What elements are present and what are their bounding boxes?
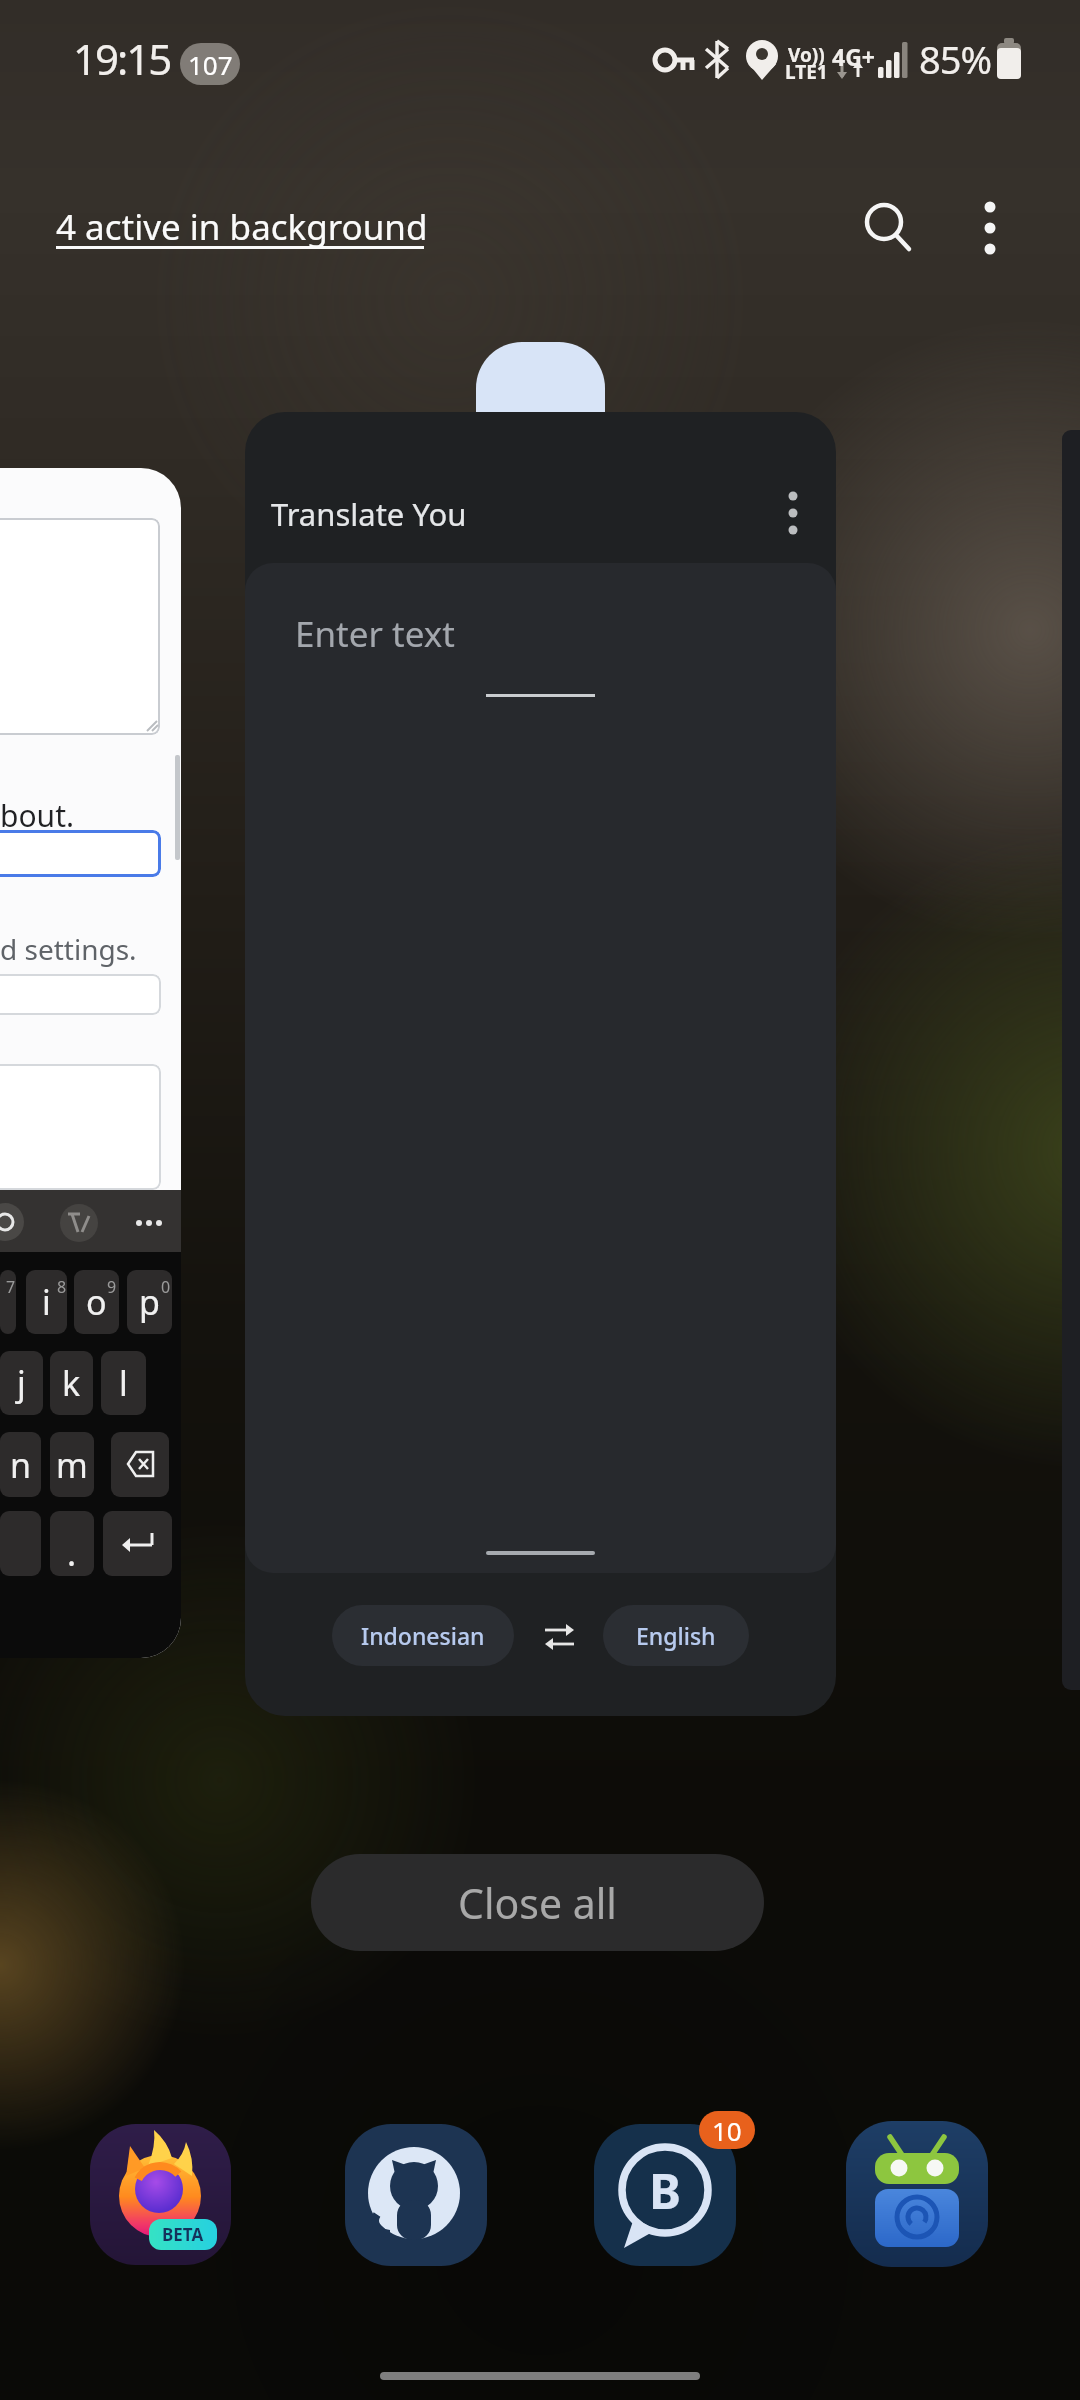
- staticText: Indonesian: [361, 1620, 485, 1651]
- button[interactable]: Close all: [311, 1854, 764, 1951]
- button[interactable]: [476, 342, 605, 473]
- button[interactable]: [966, 204, 1014, 252]
- staticText: d settings.: [0, 930, 137, 968]
- button[interactable]: [0, 1270, 16, 1334]
- staticText: BETA: [162, 2223, 204, 2246]
- staticText: 4 active in background: [56, 203, 428, 251]
- staticText: o: [86, 1279, 107, 1325]
- staticText: .: [67, 1530, 77, 1576]
- staticText: LTE1: [785, 59, 828, 85]
- staticText: Enter text: [295, 610, 455, 658]
- button[interactable]: k: [50, 1351, 93, 1415]
- button[interactable]: [111, 1432, 169, 1497]
- button[interactable]: [846, 2121, 988, 2267]
- button[interactable]: o: [74, 1270, 119, 1334]
- button[interactable]: 4 active in background: [56, 203, 428, 251]
- staticText: 107: [188, 47, 233, 82]
- button[interactable]: m: [50, 1432, 94, 1497]
- staticText: B: [649, 2158, 681, 2223]
- staticText: 19:15: [73, 30, 171, 87]
- staticText: bout.: [0, 795, 75, 836]
- button[interactable]: BETA: [90, 2124, 231, 2265]
- staticText: Vo)): [788, 42, 825, 68]
- staticText: 9: [107, 1276, 117, 1298]
- staticText: English: [636, 1620, 716, 1651]
- button[interactable]: n: [0, 1432, 41, 1497]
- staticText: l: [119, 1360, 128, 1406]
- staticText: i: [42, 1279, 51, 1325]
- staticText: n: [10, 1442, 32, 1488]
- button[interactable]: English: [603, 1605, 749, 1666]
- staticText: 10: [712, 2113, 742, 2148]
- button[interactable]: l: [101, 1351, 146, 1415]
- button[interactable]: [0, 468, 181, 1658]
- staticText: m: [56, 1442, 88, 1488]
- staticText: 4G+: [832, 41, 875, 72]
- button[interactable]: i: [26, 1270, 67, 1334]
- button[interactable]: [345, 2124, 487, 2266]
- staticText: 7: [6, 1276, 16, 1298]
- staticText: Translate You: [271, 493, 467, 535]
- button[interactable]: j: [0, 1351, 43, 1415]
- button[interactable]: [0, 1511, 41, 1576]
- button[interactable]: [245, 412, 836, 1716]
- button[interactable]: Indonesian: [332, 1605, 514, 1666]
- button[interactable]: [856, 197, 912, 253]
- button[interactable]: [103, 1511, 172, 1576]
- button[interactable]: [50, 1511, 94, 1576]
- staticText: 8: [57, 1276, 67, 1298]
- staticText: 0: [161, 1276, 171, 1298]
- button[interactable]: B: [594, 2124, 736, 2266]
- staticText: j: [17, 1360, 26, 1406]
- button[interactable]: p: [127, 1270, 172, 1334]
- staticText: p: [139, 1279, 160, 1325]
- staticText: 85%: [919, 33, 992, 85]
- staticText: Close all: [458, 1875, 617, 1931]
- staticText: k: [62, 1360, 81, 1406]
